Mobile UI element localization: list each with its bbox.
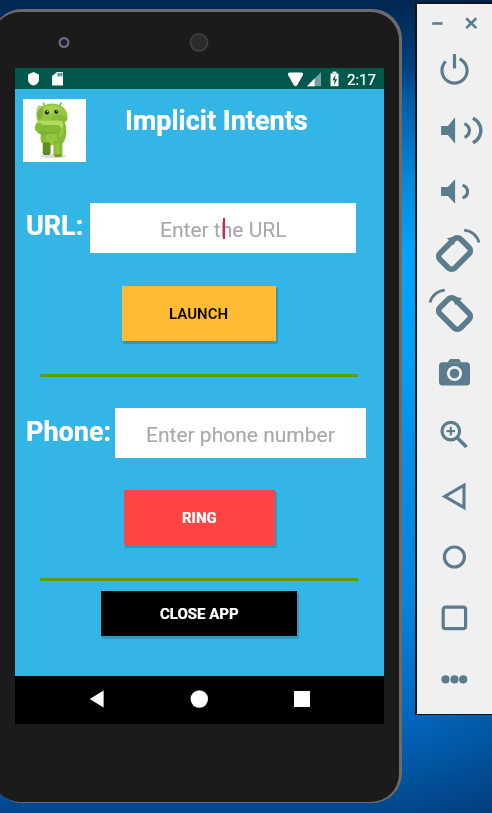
button[interactable]: Zoom	[430, 413, 480, 453]
button[interactable]: Volume up	[430, 112, 480, 152]
button[interactable]: Volume down	[430, 173, 480, 213]
staticText: 2:17	[347, 71, 376, 89]
staticText: LAUNCH	[169, 305, 229, 323]
staticText: URL:	[26, 210, 84, 242]
button[interactable]: Enter phone number	[115, 408, 366, 458]
staticText: CLOSE APP	[160, 605, 239, 623]
button[interactable]: Home	[162, 676, 237, 724]
button[interactable]: Minimize	[426, 13, 450, 37]
staticText: Enter the URL	[160, 218, 287, 243]
button[interactable]: Recent apps	[265, 676, 340, 724]
staticText: RING	[182, 509, 217, 527]
button[interactable]: More options	[430, 661, 480, 701]
button[interactable]: RING	[124, 490, 275, 545]
button[interactable]: Power	[430, 52, 480, 92]
button[interactable]: LAUNCH	[122, 286, 276, 341]
button[interactable]: Overview	[430, 599, 480, 639]
button[interactable]: Take screenshot	[430, 355, 480, 395]
staticText: Phone:	[26, 416, 112, 448]
button[interactable]: Home	[430, 538, 480, 578]
staticText: Implicit Intents	[125, 105, 308, 137]
button[interactable]: Close	[460, 13, 484, 37]
button[interactable]: Rotate left	[430, 235, 480, 275]
button[interactable]: Rotate right	[430, 295, 480, 335]
staticText: Enter phone number	[146, 423, 335, 448]
button[interactable]: Back	[75, 676, 150, 724]
button[interactable]: Enter the URL	[90, 203, 356, 253]
button[interactable]: CLOSE APP	[101, 591, 297, 636]
button[interactable]: Back	[430, 478, 480, 518]
